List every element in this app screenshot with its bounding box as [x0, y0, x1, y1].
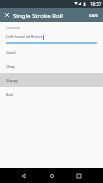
staticText: Sloppy — [6, 78, 18, 83]
button[interactable]: SAVE — [85, 8, 103, 22]
button[interactable]: Back — [17, 170, 29, 182]
staticText: 18:37 — [90, 1, 102, 7]
button[interactable]: Close — [1, 9, 13, 21]
button[interactable]: Recents — [73, 170, 85, 182]
staticText: Comment — [6, 26, 20, 30]
button[interactable]: Okay — [0, 59, 103, 73]
staticText: Single Stroke Roll — [13, 11, 63, 19]
staticText: SAVE — [89, 13, 99, 18]
button[interactable]: Home — [46, 170, 58, 182]
button[interactable]: Good — [0, 45, 103, 59]
staticText: Left hand stiffness — [6, 34, 43, 40]
staticText: Good — [6, 50, 16, 55]
staticText: Okay — [6, 64, 16, 69]
staticText: Bad — [6, 92, 13, 97]
button[interactable]: Bad — [0, 87, 103, 101]
button[interactable]: Sloppy — [0, 73, 103, 87]
